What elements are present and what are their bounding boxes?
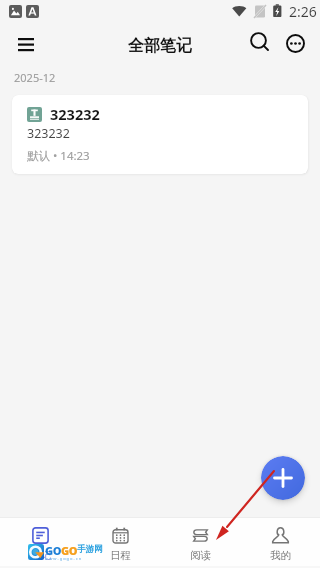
staticText: GO bbox=[45, 543, 61, 558]
staticText: 2:26 bbox=[289, 2, 317, 21]
staticText: 我的 bbox=[270, 549, 291, 562]
staticText: 阅读 bbox=[190, 549, 211, 562]
staticText: 全部笔记 bbox=[128, 36, 192, 56]
staticText: 笔记 bbox=[30, 549, 51, 562]
staticText: 2025-12 bbox=[14, 70, 56, 85]
button[interactable]: 我的 bbox=[240, 518, 320, 566]
staticText: 日程 bbox=[110, 549, 131, 562]
button[interactable]: 323232 bbox=[12, 95, 308, 174]
staticText: 323232 bbox=[50, 104, 100, 124]
button[interactable]: New note bbox=[261, 456, 305, 500]
staticText: w w w . g o g o . c n bbox=[45, 556, 82, 561]
staticText: 手游网 bbox=[77, 544, 103, 555]
button[interactable]: 日程 bbox=[80, 518, 160, 566]
button[interactable]: Menu bbox=[8, 26, 44, 62]
staticText: GO bbox=[61, 543, 77, 558]
staticText: 默认 • 14:23 bbox=[27, 148, 90, 164]
button[interactable]: 笔记 bbox=[0, 518, 80, 566]
staticText: 323232 bbox=[27, 125, 70, 142]
button[interactable]: Search bbox=[243, 25, 277, 59]
button[interactable]: 阅读 bbox=[160, 518, 240, 566]
button[interactable]: More options bbox=[278, 26, 312, 60]
